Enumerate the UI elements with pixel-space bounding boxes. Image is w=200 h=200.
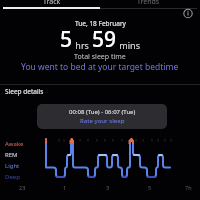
staticText: Awake [5, 140, 24, 148]
staticText: 3 [106, 184, 110, 191]
staticText: Tue, 18 February [75, 19, 126, 28]
staticText: 5 [148, 184, 152, 191]
staticText: 59 [92, 25, 117, 54]
staticText: Trends [137, 0, 160, 7]
staticText: mins [117, 39, 140, 51]
staticText: hrs [73, 39, 92, 51]
button[interactable]: Trends [100, 0, 197, 7]
staticText: Light [5, 162, 20, 170]
staticText: You went to bed at your target bedtime [21, 61, 179, 73]
staticText: Deep [5, 173, 20, 181]
button[interactable]: Track [3, 0, 100, 7]
staticText: 5 [60, 25, 73, 54]
button[interactable] [181, 7, 195, 21]
staticText: Rate your sleep [80, 117, 125, 125]
button[interactable]: 00:08 (Tue) - 06:07 (Tue) [37, 104, 167, 129]
staticText: 1 [63, 184, 67, 191]
staticText: REM [5, 151, 18, 159]
staticText: Sleep details [5, 87, 44, 96]
staticText: 00:08 (Tue) - 06:07 (Tue) [69, 108, 136, 116]
staticText: Track [43, 0, 61, 7]
staticText: 23 [19, 184, 26, 191]
staticText: 7h [185, 184, 192, 191]
staticText: Total sleep time [74, 52, 126, 62]
